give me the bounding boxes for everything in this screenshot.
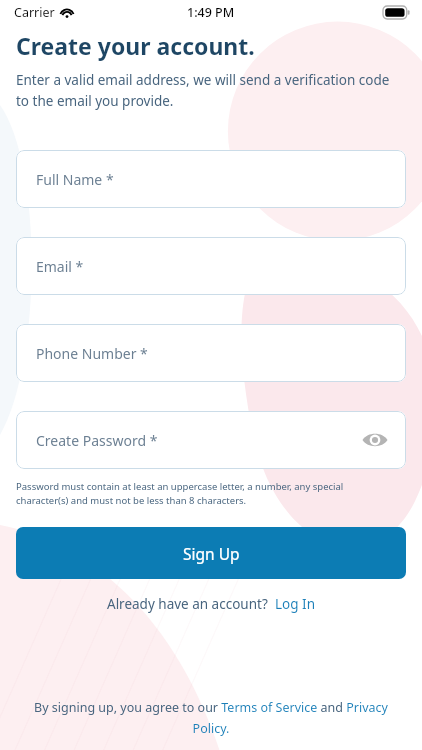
- staticText: By signing up, you agree to our Terms of…: [24, 699, 398, 736]
- staticText: Email *: [36, 257, 84, 276]
- staticText: 1:49 PM: [187, 4, 235, 21]
- button[interactable]: Create Password *: [16, 411, 406, 469]
- button[interactable]: By signing up, you agree to our Terms of…: [24, 699, 398, 736]
- staticText: Phone Number *: [36, 344, 148, 363]
- staticText: Create Password *: [36, 431, 158, 450]
- staticText: Sign Up: [183, 543, 240, 564]
- staticText: Log In: [275, 595, 315, 613]
- button[interactable]: Log In: [275, 595, 315, 613]
- button[interactable]: Show password: [360, 425, 390, 455]
- staticText: Already have an account?: [107, 595, 268, 613]
- staticText: Carrier: [14, 4, 55, 21]
- button[interactable]: Phone Number *: [16, 324, 406, 382]
- staticText: Enter a valid email address, we will sen…: [16, 71, 392, 110]
- button[interactable]: Email *: [16, 237, 406, 295]
- button[interactable]: Sign Up: [16, 527, 406, 579]
- button[interactable]: Full Name *: [16, 150, 406, 208]
- staticText: Full Name *: [36, 170, 114, 189]
- staticText: Password must contain at least an upperc…: [16, 480, 362, 507]
- staticText: Create your account.: [16, 30, 255, 61]
